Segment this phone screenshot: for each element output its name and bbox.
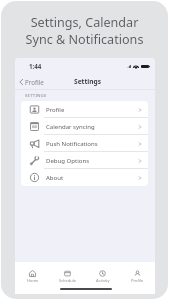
button[interactable]: Home [15, 269, 50, 284]
staticText: Settings [74, 77, 102, 86]
button[interactable]: Calendar syncing [21, 118, 148, 135]
staticText: Debug Options [46, 157, 90, 165]
staticText: Schedule [59, 278, 77, 283]
staticText: Home [27, 278, 39, 283]
staticText: About [46, 174, 64, 182]
button[interactable]: Activity [85, 269, 120, 284]
button[interactable]: Profile [15, 75, 48, 89]
staticText: Profile [25, 78, 44, 86]
button[interactable]: Schedule [50, 269, 85, 284]
staticText: Activity [96, 278, 110, 283]
staticText: Settings, Calendar Sync & Notifications [1, 14, 168, 47]
staticText: Push Notifications [46, 140, 98, 148]
button[interactable]: About [21, 169, 148, 186]
button[interactable]: Profile [21, 101, 148, 118]
staticText: SETTINGS [25, 92, 47, 98]
button[interactable]: Push Notifications [21, 135, 148, 152]
button[interactable]: Profile [120, 269, 155, 284]
staticText: 1:44 [29, 62, 42, 70]
staticText: Profile [46, 106, 65, 114]
staticText: Calendar syncing [46, 123, 95, 131]
button[interactable]: Debug Options [21, 152, 148, 169]
staticText: Profile [131, 278, 144, 283]
